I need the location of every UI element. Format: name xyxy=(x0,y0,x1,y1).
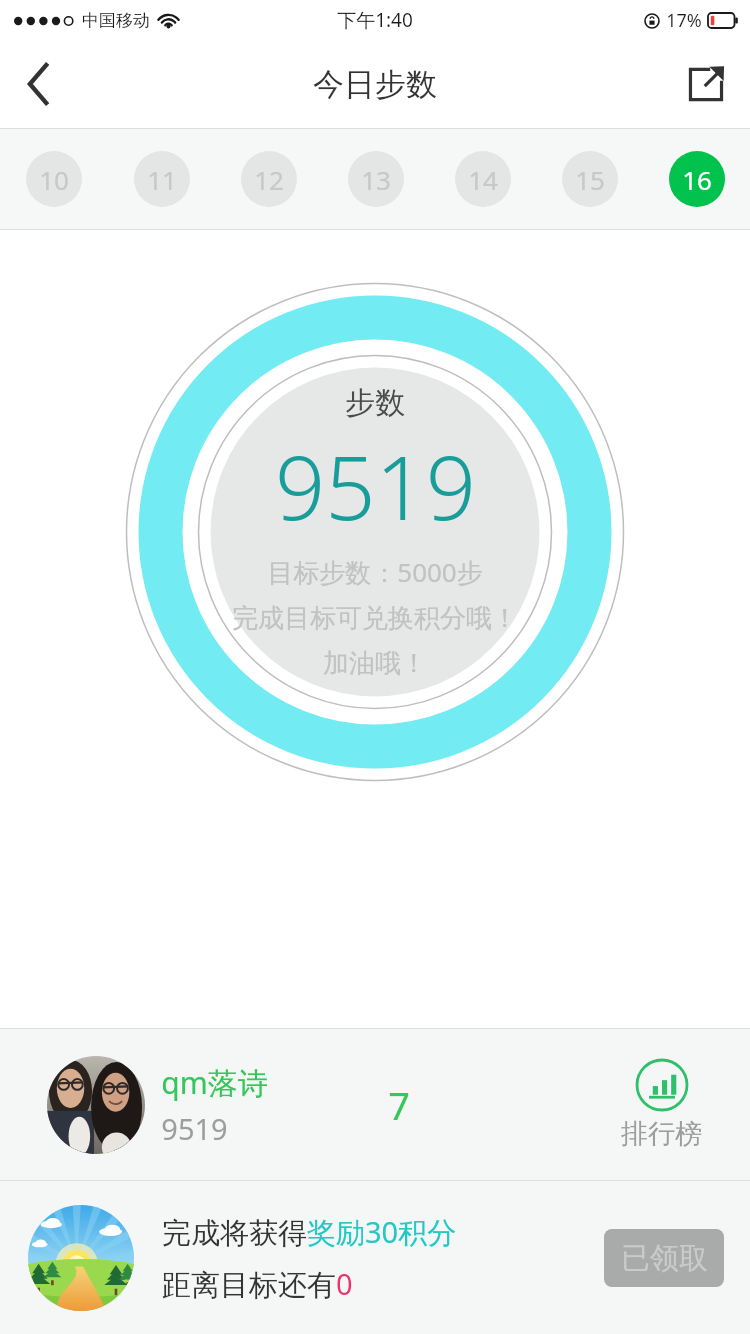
staticText: 13 xyxy=(361,162,391,197)
button[interactable]: qm落诗 xyxy=(0,1029,750,1180)
button[interactable]: 12 xyxy=(241,151,297,207)
staticText: 排行榜 xyxy=(621,1117,702,1151)
staticText: 下午1:40 xyxy=(337,7,413,33)
staticText: 完成目标可兑换积分哦！ xyxy=(232,602,518,635)
staticText: 完成将获得奖励30积分 xyxy=(162,1212,457,1252)
staticText: 16 xyxy=(682,162,712,197)
staticText: 今日步数 xyxy=(313,65,437,104)
staticText: 中国移动 xyxy=(82,10,150,31)
staticText: 步数 xyxy=(345,384,405,422)
staticText: 17% xyxy=(666,8,702,33)
button[interactable]: 10 xyxy=(26,151,82,207)
button[interactable]: Back xyxy=(0,40,78,128)
staticText: 距离目标还有0 xyxy=(162,1264,353,1304)
staticText: 9519 xyxy=(161,1109,228,1148)
staticText: 10 xyxy=(39,162,69,197)
button[interactable]: 16 xyxy=(669,151,725,207)
button[interactable]: 11 xyxy=(134,151,190,207)
staticText: 11 xyxy=(147,162,177,197)
staticText: 14 xyxy=(468,162,498,197)
button[interactable]: 已领取 xyxy=(604,1229,724,1287)
button[interactable]: Share xyxy=(662,40,750,128)
staticText: 7 xyxy=(388,1079,410,1131)
button[interactable]: 14 xyxy=(455,151,511,207)
button[interactable]: 排行榜 xyxy=(621,1058,702,1151)
staticText: 已领取 xyxy=(621,1240,708,1277)
staticText: qm落诗 xyxy=(161,1062,268,1103)
button[interactable]: 15 xyxy=(562,151,618,207)
staticText: 9519 xyxy=(275,426,476,546)
staticText: 12 xyxy=(254,162,284,197)
button[interactable]: 13 xyxy=(348,151,404,207)
staticText: 加油哦！ xyxy=(323,647,427,680)
staticText: 目标步数：5000步 xyxy=(267,554,483,590)
staticText: 15 xyxy=(575,162,605,197)
